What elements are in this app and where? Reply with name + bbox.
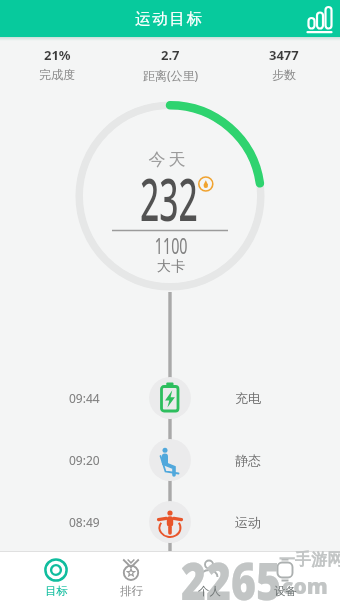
staticText: 今天: [147, 149, 187, 170]
staticText: 静态: [235, 452, 261, 468]
staticText: 21%: [44, 46, 71, 64]
staticText: 232: [140, 159, 198, 238]
button[interactable]: [18, 552, 94, 604]
button[interactable]: [243, 552, 319, 604]
staticText: 一手游网: [279, 550, 340, 569]
staticText: 运动: [235, 514, 261, 530]
staticText: 设备: [274, 584, 297, 598]
staticText: 1100: [155, 232, 188, 257]
staticText: 排行: [120, 584, 143, 598]
staticText: .com: [276, 572, 328, 596]
staticText: 距离(公里): [143, 67, 199, 83]
staticText: 09:44: [69, 390, 100, 406]
staticText: 完成度: [39, 67, 75, 82]
staticText: 08:49: [69, 514, 100, 530]
button[interactable]: [93, 552, 169, 604]
staticText: 2265: [181, 544, 281, 604]
staticText: 09:20: [69, 452, 100, 468]
staticText: 运动目标: [135, 9, 205, 29]
staticText: 2.7: [161, 46, 180, 64]
button[interactable]: [50, 434, 290, 486]
button[interactable]: [50, 372, 290, 424]
staticText: 充电: [235, 390, 261, 406]
staticText: 个人: [198, 584, 221, 598]
button[interactable]: [50, 496, 290, 548]
staticText: 步数: [272, 67, 296, 82]
button[interactable]: [168, 552, 244, 604]
staticText: 大卡: [157, 258, 185, 276]
button[interactable]: [301, 3, 335, 35]
staticText: 目标: [45, 584, 68, 598]
staticText: 3477: [269, 46, 299, 64]
